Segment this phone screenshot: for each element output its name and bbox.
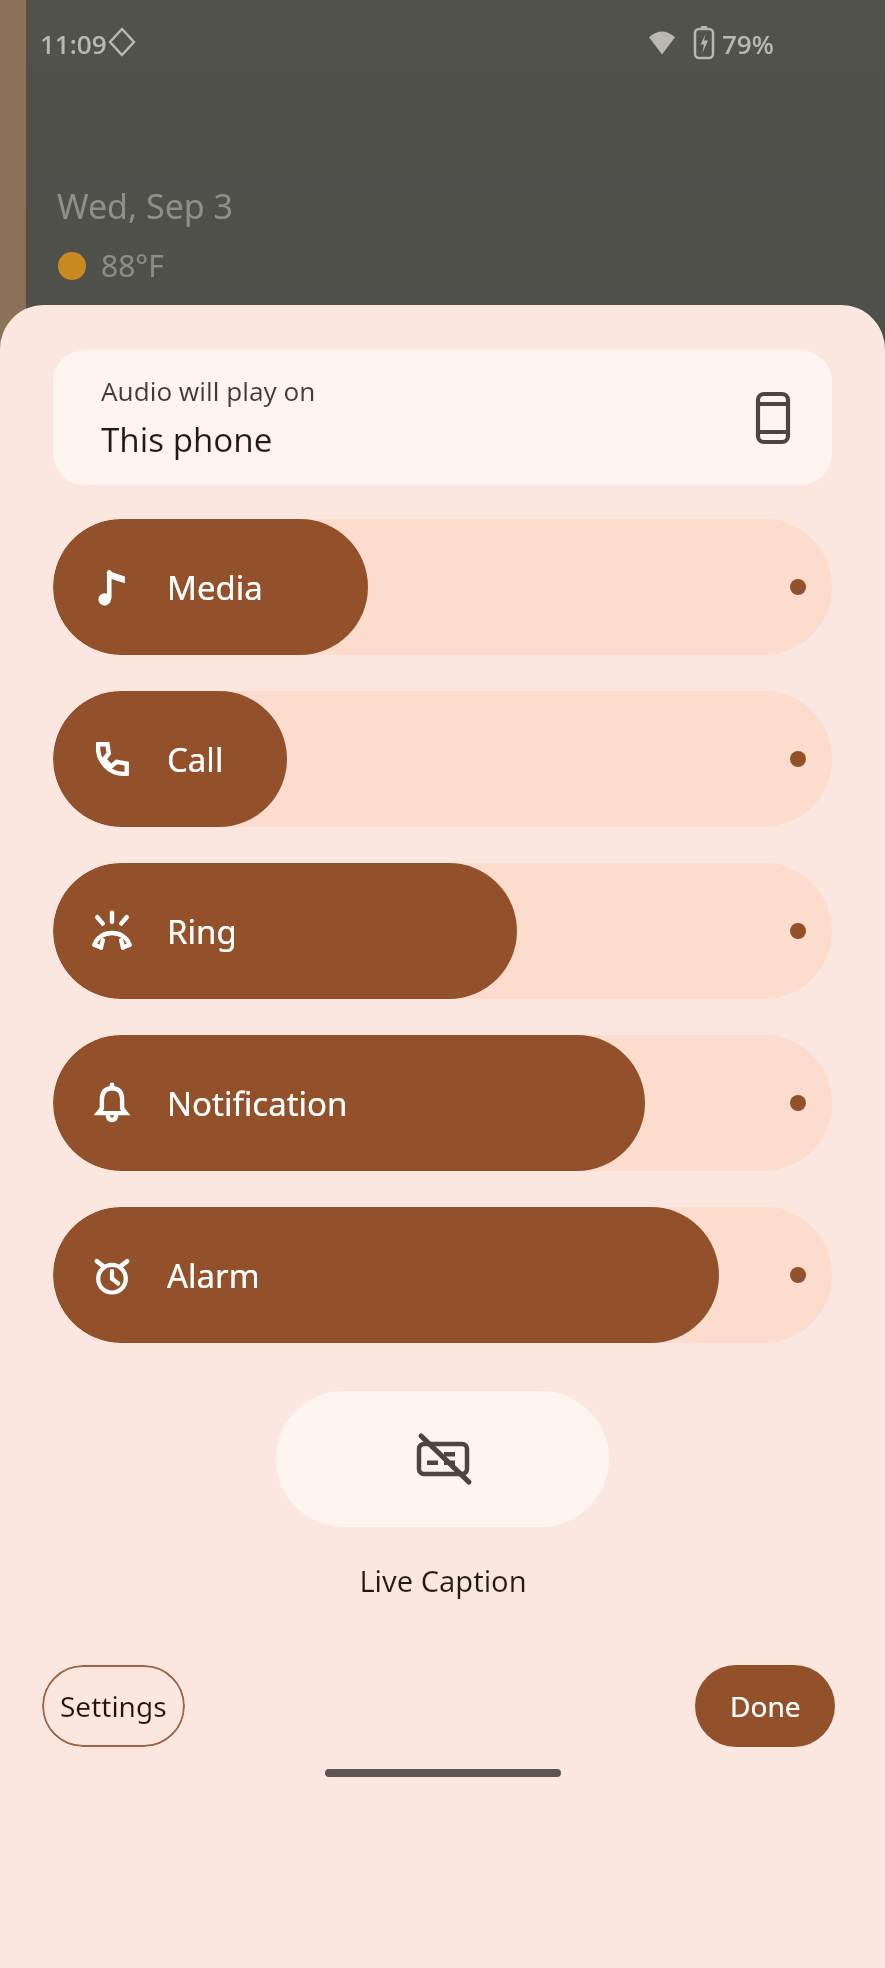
staticText: Call [167, 737, 224, 782]
button[interactable]: Settings [42, 1665, 185, 1747]
button[interactable]: Ring [53, 863, 832, 999]
staticText: 79% [722, 26, 774, 61]
staticText: Audio will play on [101, 373, 316, 408]
button[interactable]: Live Caption [276, 1391, 609, 1527]
button[interactable]: Media [53, 519, 832, 655]
staticText: Alarm [167, 1253, 260, 1298]
staticText: 88°F [101, 245, 164, 286]
button[interactable]: Notification [53, 1035, 832, 1171]
staticText: Ring [167, 909, 237, 954]
button[interactable]: Alarm [53, 1207, 832, 1343]
staticText: Media [167, 565, 263, 610]
button[interactable]: Audio will play on [53, 350, 832, 485]
staticText: Live Caption [359, 1561, 527, 1600]
staticText: Wed, Sep 3 [57, 183, 234, 229]
staticText: Notification [167, 1081, 348, 1126]
button[interactable]: Call [53, 691, 832, 827]
staticText: Settings [60, 1687, 167, 1725]
staticText: 11:09 [40, 26, 107, 61]
staticText: This phone [101, 417, 273, 462]
staticText: Done [730, 1687, 801, 1725]
button[interactable]: Done [695, 1665, 835, 1747]
